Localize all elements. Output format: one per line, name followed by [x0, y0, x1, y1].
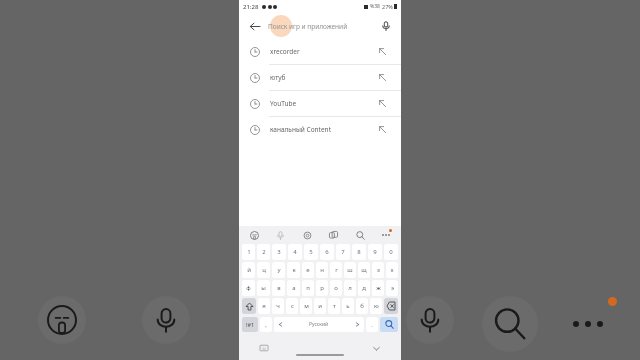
staticText: х: [390, 266, 394, 274]
staticText: з: [377, 266, 380, 274]
staticText: Поиск игр и приложений: [268, 22, 348, 31]
staticText: !#1: [246, 321, 255, 328]
button[interactable]: я: [258, 298, 270, 314]
button[interactable]: 5: [304, 244, 318, 260]
button[interactable]: й: [242, 262, 255, 278]
button[interactable]: 9: [368, 244, 382, 260]
button[interactable]: р: [316, 280, 328, 296]
staticText: щ: [361, 266, 367, 274]
button[interactable]: ф: [242, 280, 255, 296]
button[interactable]: More: [379, 228, 393, 242]
button[interactable]: .: [366, 317, 378, 332]
staticText: %38: [370, 3, 380, 10]
staticText: м: [304, 302, 309, 310]
staticText: .: [371, 321, 373, 329]
staticText: ютуб: [270, 73, 286, 82]
button[interactable]: Keyboard: [257, 341, 271, 355]
staticText: о: [334, 284, 338, 292]
button[interactable]: ь: [342, 298, 354, 314]
button[interactable]: н: [316, 262, 328, 278]
button[interactable]: щ: [358, 262, 370, 278]
button[interactable]: у: [272, 262, 285, 278]
button[interactable]: Emoji: [247, 228, 261, 242]
button[interactable]: Settings: [300, 228, 314, 242]
button[interactable]: л: [344, 280, 356, 296]
button[interactable]: ж: [372, 280, 384, 296]
button[interactable]: в: [272, 280, 285, 296]
staticText: в: [277, 284, 281, 292]
staticText: п: [306, 284, 310, 292]
button[interactable]: Emoji: [38, 296, 86, 344]
staticText: у: [277, 266, 281, 274]
staticText: 9: [373, 248, 377, 256]
button[interactable]: о: [330, 280, 342, 296]
button[interactable]: ,: [260, 317, 272, 332]
staticText: й: [247, 266, 251, 274]
button[interactable]: д: [358, 280, 370, 296]
button[interactable]: ш: [344, 262, 356, 278]
button[interactable]: 3: [272, 244, 286, 260]
button[interactable]: Stickers: [326, 228, 340, 242]
button[interactable]: Back: [245, 17, 263, 35]
button[interactable]: 0: [384, 244, 398, 260]
button[interactable]: ц: [257, 262, 270, 278]
button[interactable]: канальный Content: [239, 117, 401, 142]
button[interactable]: Русский: [274, 317, 364, 332]
button[interactable]: Поиск игр и приложений: [268, 13, 377, 39]
button[interactable]: !#1: [242, 317, 258, 332]
button[interactable]: Voice search: [377, 17, 395, 35]
button[interactable]: Search: [482, 296, 538, 352]
button[interactable]: Microphone: [142, 296, 190, 344]
button[interactable]: ч: [272, 298, 284, 314]
button[interactable]: Backspace: [384, 298, 398, 314]
staticText: Русский: [309, 321, 329, 328]
button[interactable]: г: [330, 262, 342, 278]
staticText: ,: [265, 321, 267, 329]
staticText: и: [318, 302, 322, 310]
button[interactable]: п: [302, 280, 314, 296]
button[interactable]: 8: [352, 244, 366, 260]
button[interactable]: ы: [257, 280, 270, 296]
button[interactable]: ю: [370, 298, 382, 314]
button[interactable]: а: [287, 280, 300, 296]
button[interactable]: х: [386, 262, 398, 278]
button[interactable]: 4: [288, 244, 302, 260]
staticText: 6: [325, 248, 329, 256]
staticText: т: [333, 302, 336, 310]
staticText: YouTube: [270, 99, 297, 108]
button[interactable]: ютуб: [239, 65, 401, 90]
button[interactable]: Voice: [406, 296, 454, 344]
button[interactable]: с: [286, 298, 298, 314]
button[interactable]: э: [386, 280, 398, 296]
staticText: 7: [341, 248, 345, 256]
button[interactable]: Search: [380, 317, 398, 332]
button[interactable]: б: [356, 298, 368, 314]
button[interactable]: к: [287, 262, 300, 278]
button[interactable]: т: [328, 298, 340, 314]
button[interactable]: 2: [257, 244, 270, 260]
button[interactable]: More: [564, 300, 612, 348]
staticText: 1: [247, 248, 251, 256]
staticText: р: [320, 284, 324, 292]
staticText: 4: [293, 248, 297, 256]
button[interactable]: и: [314, 298, 326, 314]
button[interactable]: м: [300, 298, 312, 314]
button[interactable]: з: [372, 262, 384, 278]
button[interactable]: е: [302, 262, 314, 278]
button[interactable]: xrecorder: [239, 39, 401, 64]
button[interactable]: Search: [353, 228, 367, 242]
button[interactable]: Voice input: [273, 228, 287, 242]
staticText: б: [360, 302, 364, 310]
button[interactable]: 1: [242, 244, 255, 260]
button[interactable]: Hide keyboard: [369, 341, 383, 355]
staticText: к: [292, 266, 296, 274]
button[interactable]: 6: [320, 244, 334, 260]
staticText: канальный Content: [270, 125, 331, 134]
staticText: ж: [376, 284, 381, 292]
button[interactable]: Shift: [242, 298, 256, 314]
button[interactable]: 7: [336, 244, 350, 260]
staticText: д: [362, 284, 366, 292]
staticText: 8: [357, 248, 361, 256]
staticText: г: [335, 266, 338, 274]
button[interactable]: YouTube: [239, 91, 401, 116]
